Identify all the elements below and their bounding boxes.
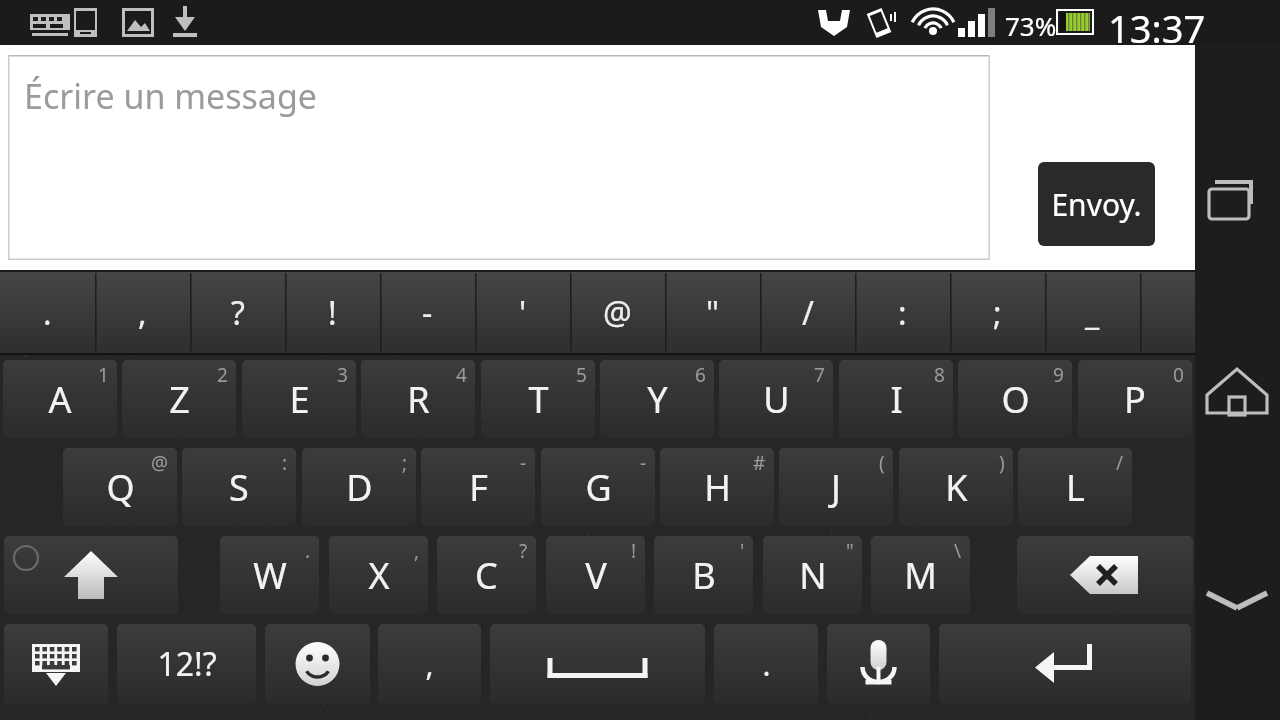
staticText: " bbox=[846, 538, 854, 564]
button[interactable]: Écrire un message bbox=[8, 55, 990, 260]
staticText: 4 bbox=[456, 362, 467, 388]
button[interactable]: . bbox=[0, 270, 95, 355]
staticText: ? bbox=[519, 538, 528, 564]
button[interactable]: H bbox=[660, 448, 774, 526]
staticText: E bbox=[289, 375, 310, 424]
button[interactable]: G bbox=[541, 448, 655, 526]
button[interactable]: V bbox=[546, 536, 645, 614]
button[interactable]: K bbox=[899, 448, 1013, 526]
button[interactable]: Y bbox=[600, 360, 714, 438]
staticText: , bbox=[414, 538, 420, 564]
staticText: . bbox=[305, 538, 311, 564]
button[interactable]: Hide keyboard bbox=[4, 624, 108, 704]
staticText: Envoy. bbox=[1051, 184, 1142, 225]
staticText: _ bbox=[1085, 291, 1100, 335]
button[interactable]: Recent apps bbox=[1195, 165, 1280, 275]
staticText: Y bbox=[647, 375, 668, 424]
button[interactable]: F bbox=[421, 448, 535, 526]
button[interactable]: Z bbox=[122, 360, 236, 438]
button[interactable]: D bbox=[302, 448, 416, 526]
button[interactable]: _ bbox=[1045, 270, 1140, 355]
button[interactable]: : bbox=[855, 270, 950, 355]
button[interactable]: " bbox=[665, 270, 760, 355]
staticText: A bbox=[48, 375, 72, 424]
button[interactable]: Backspace bbox=[1017, 536, 1193, 614]
button[interactable]: Shift bbox=[4, 536, 178, 614]
button[interactable]: N bbox=[763, 536, 862, 614]
staticText: ? bbox=[231, 291, 245, 335]
staticText: . bbox=[762, 644, 771, 685]
staticText: ' bbox=[740, 538, 745, 564]
button[interactable]: Home bbox=[1195, 355, 1280, 465]
button[interactable]: Q bbox=[63, 448, 177, 526]
button[interactable]: A bbox=[3, 360, 117, 438]
button[interactable]: W bbox=[220, 536, 319, 614]
staticText: T bbox=[528, 375, 549, 424]
staticText: 1 bbox=[98, 362, 109, 388]
staticText: M bbox=[904, 551, 937, 600]
staticText: U bbox=[763, 375, 790, 424]
button[interactable]: Back bbox=[1195, 545, 1280, 655]
staticText: B bbox=[692, 551, 716, 600]
staticText: 9 bbox=[1053, 362, 1064, 388]
staticText: 73% bbox=[1005, 8, 1057, 43]
button[interactable]: Voice input bbox=[827, 624, 930, 704]
button[interactable]: L bbox=[1018, 448, 1132, 526]
button[interactable]: Envoy. bbox=[1038, 162, 1155, 246]
button[interactable]: E bbox=[242, 360, 356, 438]
staticText: Écrire un message bbox=[24, 73, 317, 119]
button[interactable]: R bbox=[361, 360, 475, 438]
staticText: : bbox=[898, 291, 907, 335]
button[interactable]: J bbox=[779, 448, 893, 526]
staticText: O bbox=[1001, 375, 1030, 424]
staticText: K bbox=[945, 463, 968, 512]
staticText: L bbox=[1066, 463, 1085, 512]
staticText: 0 bbox=[1173, 362, 1184, 388]
staticText: - bbox=[422, 291, 433, 335]
staticText: D bbox=[346, 463, 373, 512]
button[interactable]: 12!? bbox=[117, 624, 256, 704]
button[interactable]: Enter bbox=[939, 624, 1191, 704]
staticText: : bbox=[282, 450, 288, 476]
button[interactable]: S bbox=[182, 448, 296, 526]
staticText: H bbox=[704, 463, 731, 512]
button[interactable]: ? bbox=[190, 270, 285, 355]
staticText: ! bbox=[631, 538, 637, 564]
button[interactable]: ; bbox=[950, 270, 1045, 355]
button[interactable]: O bbox=[958, 360, 1072, 438]
button[interactable]: Space bbox=[490, 624, 705, 704]
button[interactable]: T bbox=[481, 360, 595, 438]
button[interactable]: . bbox=[714, 624, 818, 704]
button[interactable]: / bbox=[760, 270, 855, 355]
staticText: I bbox=[890, 375, 903, 424]
staticText: 5 bbox=[576, 362, 587, 388]
staticText: F bbox=[469, 463, 488, 512]
staticText: - bbox=[520, 450, 527, 476]
staticText: 6 bbox=[695, 362, 706, 388]
staticText: ' bbox=[519, 291, 527, 335]
staticText: 2 bbox=[217, 362, 228, 388]
staticText: 8 bbox=[934, 362, 945, 388]
button[interactable]: C bbox=[437, 536, 536, 614]
button[interactable]: P bbox=[1078, 360, 1192, 438]
staticText: W bbox=[253, 551, 287, 600]
button[interactable]: Emoji bbox=[265, 624, 370, 704]
button[interactable]: X bbox=[329, 536, 428, 614]
button[interactable]: , bbox=[95, 270, 190, 355]
button[interactable]: @ bbox=[570, 270, 665, 355]
staticText: 12!? bbox=[157, 642, 217, 686]
staticText: . bbox=[43, 291, 52, 335]
staticText: ( bbox=[879, 450, 885, 476]
button[interactable]: U bbox=[719, 360, 833, 438]
staticText: C bbox=[475, 551, 498, 600]
button[interactable]: ! bbox=[285, 270, 380, 355]
staticText: V bbox=[585, 551, 607, 600]
button[interactable]: - bbox=[380, 270, 475, 355]
button[interactable]: ' bbox=[475, 270, 570, 355]
staticText: \ bbox=[954, 538, 962, 564]
staticText: P bbox=[1124, 375, 1146, 424]
button[interactable]: M bbox=[871, 536, 970, 614]
button[interactable]: B bbox=[654, 536, 753, 614]
button[interactable]: I bbox=[839, 360, 953, 438]
button[interactable]: , bbox=[378, 624, 481, 704]
